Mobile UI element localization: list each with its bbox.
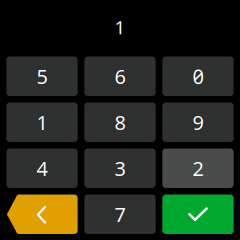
button[interactable]: 9: [162, 102, 234, 142]
button[interactable]: 0: [162, 56, 234, 96]
button[interactable]: 6: [84, 56, 156, 96]
staticText: 7: [114, 201, 125, 228]
staticText: 5: [36, 63, 47, 90]
button[interactable]: 3: [84, 148, 156, 188]
button[interactable]: 5: [6, 56, 78, 96]
staticText: 0: [192, 63, 203, 90]
staticText: 8: [114, 109, 125, 136]
staticText: 1: [114, 15, 125, 39]
button[interactable]: Delete: [6, 194, 78, 234]
button[interactable]: 7: [84, 194, 156, 234]
button[interactable]: 2: [162, 148, 234, 188]
staticText: 9: [192, 109, 203, 136]
staticText: 1: [36, 109, 47, 136]
button[interactable]: Confirm: [162, 194, 234, 234]
staticText: 6: [114, 63, 125, 90]
button[interactable]: 1: [6, 102, 78, 142]
button[interactable]: 4: [6, 148, 78, 188]
staticText: 2: [192, 155, 203, 182]
button[interactable]: 8: [84, 102, 156, 142]
staticText: 4: [36, 155, 47, 182]
staticText: 3: [114, 155, 125, 182]
